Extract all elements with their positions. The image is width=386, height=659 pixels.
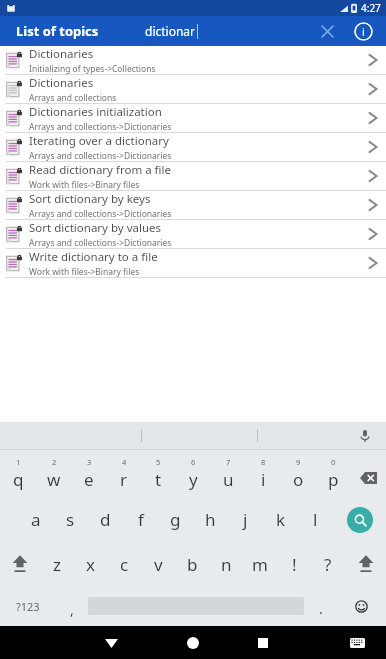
staticText: 4 bbox=[122, 457, 127, 467]
button[interactable]: 9 bbox=[281, 450, 316, 497]
staticText: o bbox=[293, 468, 304, 491]
button[interactable]: l bbox=[298, 497, 333, 542]
staticText: h bbox=[205, 508, 216, 531]
staticText: m bbox=[252, 553, 268, 576]
staticText: n bbox=[221, 553, 232, 576]
button[interactable]: Voice input bbox=[354, 425, 376, 447]
staticText: a bbox=[31, 508, 41, 531]
button[interactable]: d bbox=[88, 497, 123, 542]
staticText: g bbox=[170, 508, 181, 531]
staticText: ? bbox=[324, 553, 332, 576]
button[interactable]: 0 bbox=[316, 450, 351, 497]
button[interactable]: Shift bbox=[0, 542, 40, 586]
button[interactable]: Dictionaries bbox=[0, 46, 386, 75]
button[interactable]: Dictionaries initialization bbox=[0, 104, 386, 133]
staticText: Sort dictionary by keys bbox=[29, 191, 151, 207]
button[interactable]: s bbox=[53, 497, 88, 542]
button[interactable]: 8 bbox=[246, 450, 281, 497]
button[interactable]: Sort dictionary by values bbox=[0, 220, 386, 249]
button[interactable]: x bbox=[73, 542, 107, 586]
button[interactable]: f bbox=[123, 497, 158, 542]
staticText: Arrays and collections->Dictionaries bbox=[29, 237, 172, 248]
staticText: e bbox=[84, 468, 94, 491]
button[interactable]: Dictionaries bbox=[0, 75, 386, 104]
staticText: 2 bbox=[52, 457, 57, 467]
button[interactable]: Emoji bbox=[337, 586, 386, 626]
button[interactable]: k bbox=[263, 497, 298, 542]
button[interactable]: g bbox=[158, 497, 193, 542]
staticText: k bbox=[276, 508, 286, 531]
staticText: r bbox=[120, 468, 128, 491]
staticText: Arrays and collections->Dictionaries bbox=[29, 150, 172, 161]
staticText: u bbox=[223, 468, 234, 491]
button[interactable]: h bbox=[193, 497, 228, 542]
staticText: Arrays and collections bbox=[29, 92, 117, 103]
button[interactable]: Sort dictionary by keys bbox=[0, 191, 386, 220]
button[interactable]: . bbox=[304, 586, 337, 626]
button[interactable]: a bbox=[18, 497, 53, 542]
button[interactable]: Shift bbox=[345, 542, 386, 586]
staticText: 4:27 bbox=[361, 1, 381, 15]
staticText: b bbox=[187, 553, 198, 576]
button[interactable]: 6 bbox=[176, 450, 211, 497]
staticText: p bbox=[328, 468, 339, 491]
staticText: 0 bbox=[331, 457, 336, 467]
button[interactable]: , bbox=[55, 586, 88, 626]
button[interactable]: m bbox=[243, 542, 277, 586]
button[interactable]: 3 bbox=[71, 450, 106, 497]
button[interactable]: b bbox=[175, 542, 209, 586]
staticText: List of topics bbox=[16, 22, 99, 40]
button[interactable]: 5 bbox=[141, 450, 176, 497]
staticText: Work with files->Binary files bbox=[29, 266, 140, 277]
staticText: f bbox=[138, 508, 144, 531]
button[interactable]: Write dictionary to a file bbox=[0, 249, 386, 278]
staticText: v bbox=[154, 553, 163, 576]
staticText: x bbox=[86, 553, 95, 576]
staticText: 8 bbox=[261, 457, 266, 467]
staticText: . bbox=[319, 599, 323, 618]
button[interactable]: Read dictionary from a file bbox=[0, 162, 386, 191]
button[interactable]: z bbox=[40, 542, 73, 586]
button[interactable]: 1 bbox=[0, 450, 36, 497]
staticText: z bbox=[53, 553, 61, 576]
staticText: dictionar bbox=[145, 23, 196, 39]
staticText: Initializing of types->Collections bbox=[29, 63, 156, 74]
staticText: Dictionaries initialization bbox=[29, 104, 162, 120]
button[interactable]: Recent apps bbox=[248, 628, 278, 658]
button[interactable]: ?123 bbox=[0, 586, 55, 626]
staticText: l bbox=[313, 508, 318, 531]
staticText: c bbox=[120, 553, 129, 576]
button[interactable]: 4 bbox=[106, 450, 141, 497]
button[interactable]: Backspace bbox=[351, 450, 386, 497]
button[interactable]: Search bbox=[334, 497, 386, 542]
staticText: Dictionaries bbox=[29, 46, 94, 62]
button[interactable]: ! bbox=[277, 542, 311, 586]
button[interactable]: 7 bbox=[211, 450, 246, 497]
button[interactable]: Home bbox=[178, 628, 208, 658]
staticText: 5 bbox=[156, 457, 161, 467]
button[interactable]: c bbox=[107, 542, 141, 586]
button[interactable]: Clear search bbox=[314, 18, 340, 44]
button[interactable]: ? bbox=[311, 542, 345, 586]
staticText: Arrays and collections->Dictionaries bbox=[29, 121, 172, 132]
button[interactable]: n bbox=[209, 542, 243, 586]
button[interactable]: 2 bbox=[36, 450, 71, 497]
button[interactable]: Info bbox=[350, 18, 376, 44]
button[interactable]: Back bbox=[96, 628, 126, 658]
staticText: w bbox=[47, 468, 61, 491]
staticText: 1 bbox=[16, 457, 21, 467]
staticText: Dictionaries bbox=[29, 75, 94, 91]
staticText: Read dictionary from a file bbox=[29, 162, 171, 178]
button[interactable]: j bbox=[228, 497, 263, 542]
staticText: d bbox=[100, 508, 111, 531]
staticText: ! bbox=[292, 553, 297, 576]
staticText: ?123 bbox=[16, 599, 40, 614]
staticText: s bbox=[66, 508, 75, 531]
button[interactable]: Iterating over a dictionary bbox=[0, 133, 386, 162]
staticText: 9 bbox=[296, 457, 301, 467]
staticText: 7 bbox=[226, 457, 231, 467]
staticText: i bbox=[261, 468, 266, 491]
button[interactable]: Switch keyboard bbox=[342, 628, 372, 658]
button[interactable]: v bbox=[141, 542, 175, 586]
